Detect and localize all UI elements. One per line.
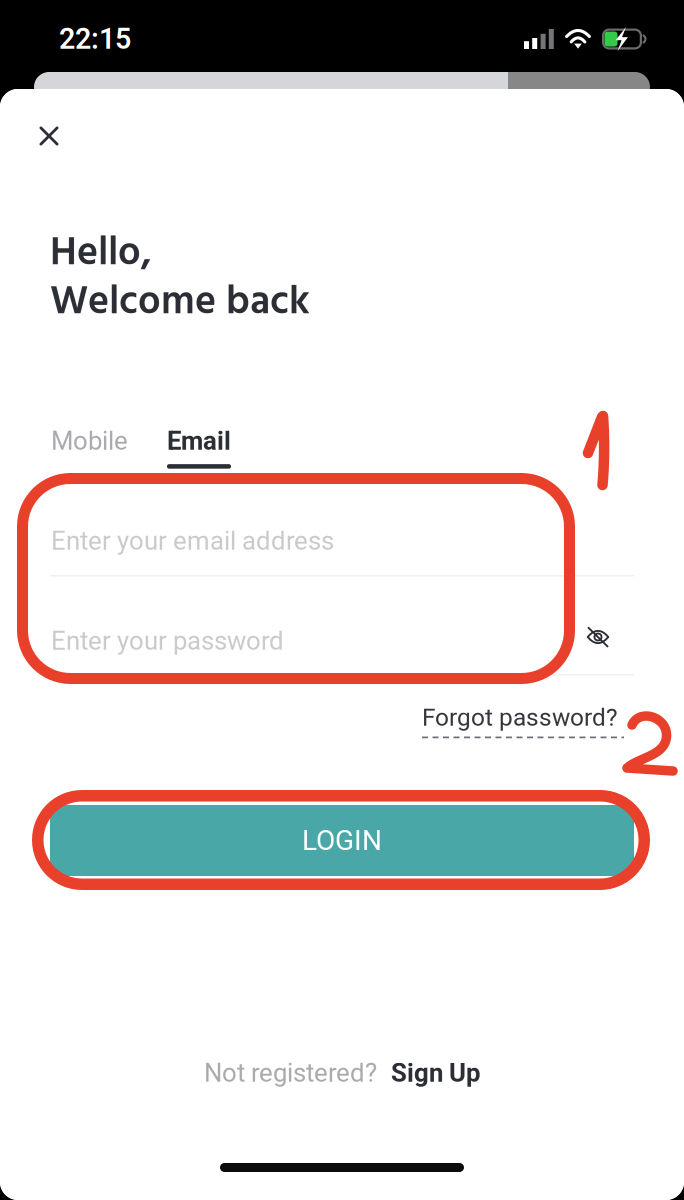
staticText: Enter your password bbox=[51, 626, 284, 656]
staticText: Enter your email address bbox=[51, 526, 334, 556]
staticText: Email bbox=[167, 426, 231, 456]
staticText: Hello, bbox=[50, 222, 152, 286]
button[interactable]: Email bbox=[167, 426, 231, 469]
staticText: Forgot password? bbox=[422, 703, 618, 732]
staticText: Mobile bbox=[51, 426, 128, 456]
button[interactable]: Close bbox=[21, 108, 77, 164]
button[interactable]: Forgot password? bbox=[422, 703, 624, 739]
button[interactable]: Mobile bbox=[51, 426, 128, 456]
staticText: 22:15 bbox=[59, 22, 131, 56]
staticText: Not registered? bbox=[204, 1058, 377, 1088]
button[interactable]: LOGIN bbox=[50, 805, 634, 876]
button[interactable]: Sign Up bbox=[391, 1058, 480, 1088]
button[interactable]: Show password bbox=[571, 610, 625, 664]
staticText: Welcome back bbox=[50, 271, 310, 335]
staticText: LOGIN bbox=[302, 824, 382, 857]
staticText: Sign Up bbox=[391, 1058, 480, 1088]
